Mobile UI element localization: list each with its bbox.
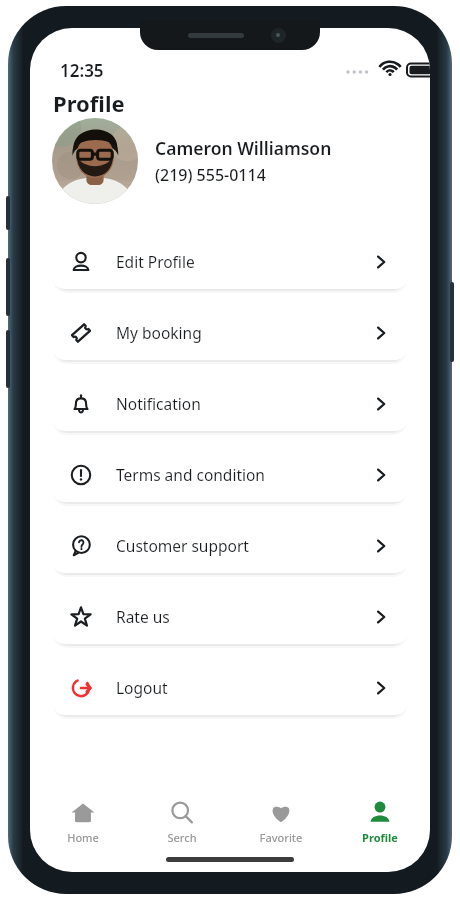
staticText: Logout — [116, 677, 168, 698]
button[interactable]: Rate us — [52, 589, 408, 644]
staticText: Serch — [152, 830, 212, 845]
staticText: Profile — [350, 830, 410, 845]
staticText: Edit Profile — [116, 251, 195, 272]
button[interactable]: Notification — [52, 376, 408, 431]
staticText: Cameron Williamson — [155, 136, 332, 160]
button[interactable]: Profile — [350, 796, 410, 849]
button[interactable]: Customer support — [52, 518, 408, 573]
staticText: My booking — [116, 322, 202, 343]
staticText: (219) 555-0114 — [155, 164, 266, 186]
button[interactable]: Favorite — [251, 796, 311, 849]
button[interactable]: My booking — [52, 305, 408, 360]
staticText: Terms and condition — [116, 464, 265, 485]
staticText: 12:35 — [60, 59, 104, 82]
button[interactable]: Edit Profile — [52, 234, 408, 289]
staticText: Home — [53, 830, 113, 845]
button[interactable]: Logout — [52, 660, 408, 715]
staticText: Customer support — [116, 535, 249, 556]
staticText: Notification — [116, 393, 201, 414]
button[interactable]: Serch — [152, 796, 212, 849]
staticText: Favorite — [251, 830, 311, 845]
button[interactable]: Terms and condition — [52, 447, 408, 502]
button[interactable]: Home — [53, 796, 113, 849]
staticText: Profile — [53, 88, 125, 118]
staticText: Rate us — [116, 606, 170, 627]
